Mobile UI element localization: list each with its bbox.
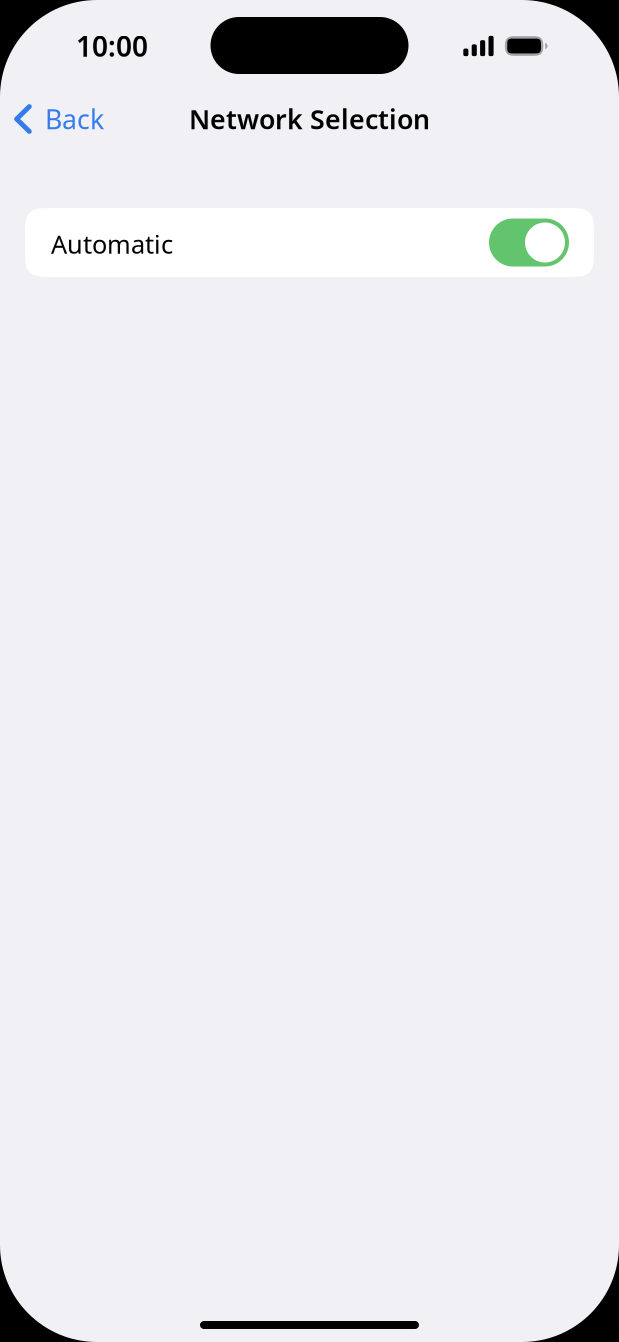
staticText: Network Selection: [189, 101, 430, 137]
staticText: Automatic: [51, 227, 173, 261]
button[interactable]: Back: [0, 90, 118, 148]
staticText: Back: [45, 101, 104, 137]
button[interactable]: Automatic: [489, 218, 569, 266]
button[interactable]: Automatic: [25, 208, 594, 277]
staticText: 10:00: [76, 27, 148, 65]
